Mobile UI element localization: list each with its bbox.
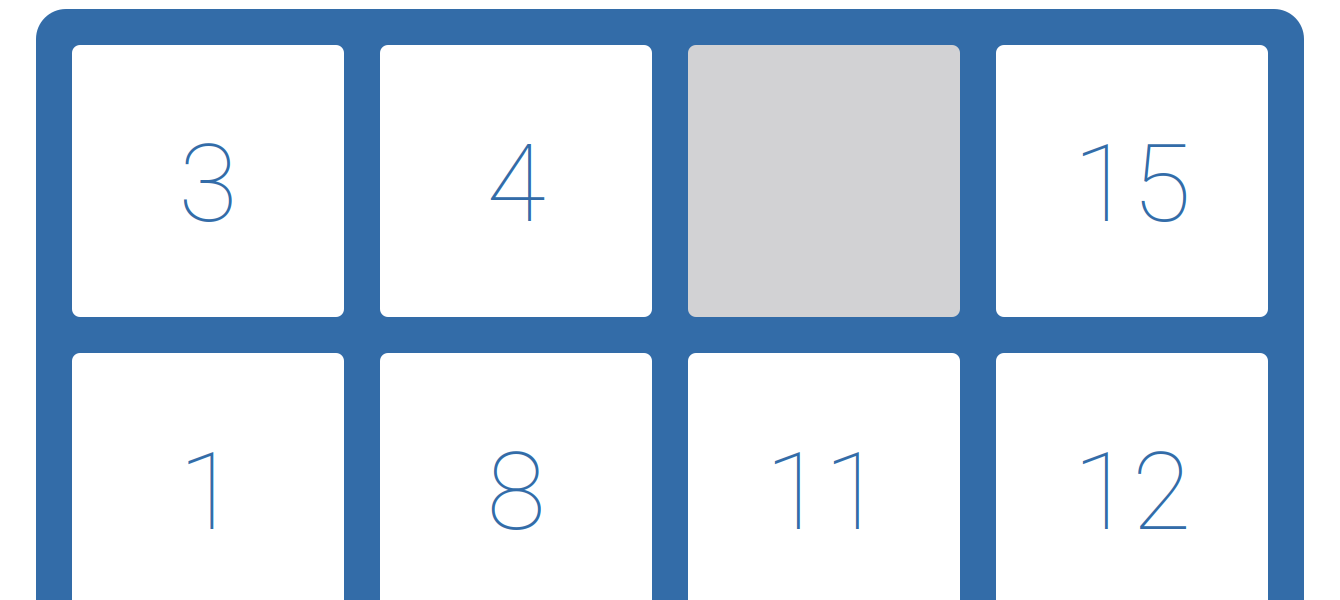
button[interactable]: Tile 12 bbox=[996, 353, 1268, 600]
button[interactable]: Tile 3 bbox=[72, 45, 344, 317]
staticText: 11 bbox=[765, 429, 883, 555]
button[interactable]: Tile 4 bbox=[380, 45, 652, 317]
button[interactable]: Tile 8 bbox=[380, 353, 652, 600]
staticText: 4 bbox=[486, 121, 545, 247]
staticText: 12 bbox=[1073, 429, 1191, 555]
button[interactable]: Empty square bbox=[688, 45, 960, 317]
staticText: 1 bbox=[178, 429, 237, 555]
button[interactable]: Tile 11 bbox=[688, 353, 960, 600]
button[interactable]: Tile 15 bbox=[996, 45, 1268, 317]
button[interactable]: Tile 1 bbox=[72, 353, 344, 600]
staticText: 15 bbox=[1073, 121, 1191, 247]
staticText: 8 bbox=[486, 429, 545, 555]
staticText: 3 bbox=[178, 121, 237, 247]
